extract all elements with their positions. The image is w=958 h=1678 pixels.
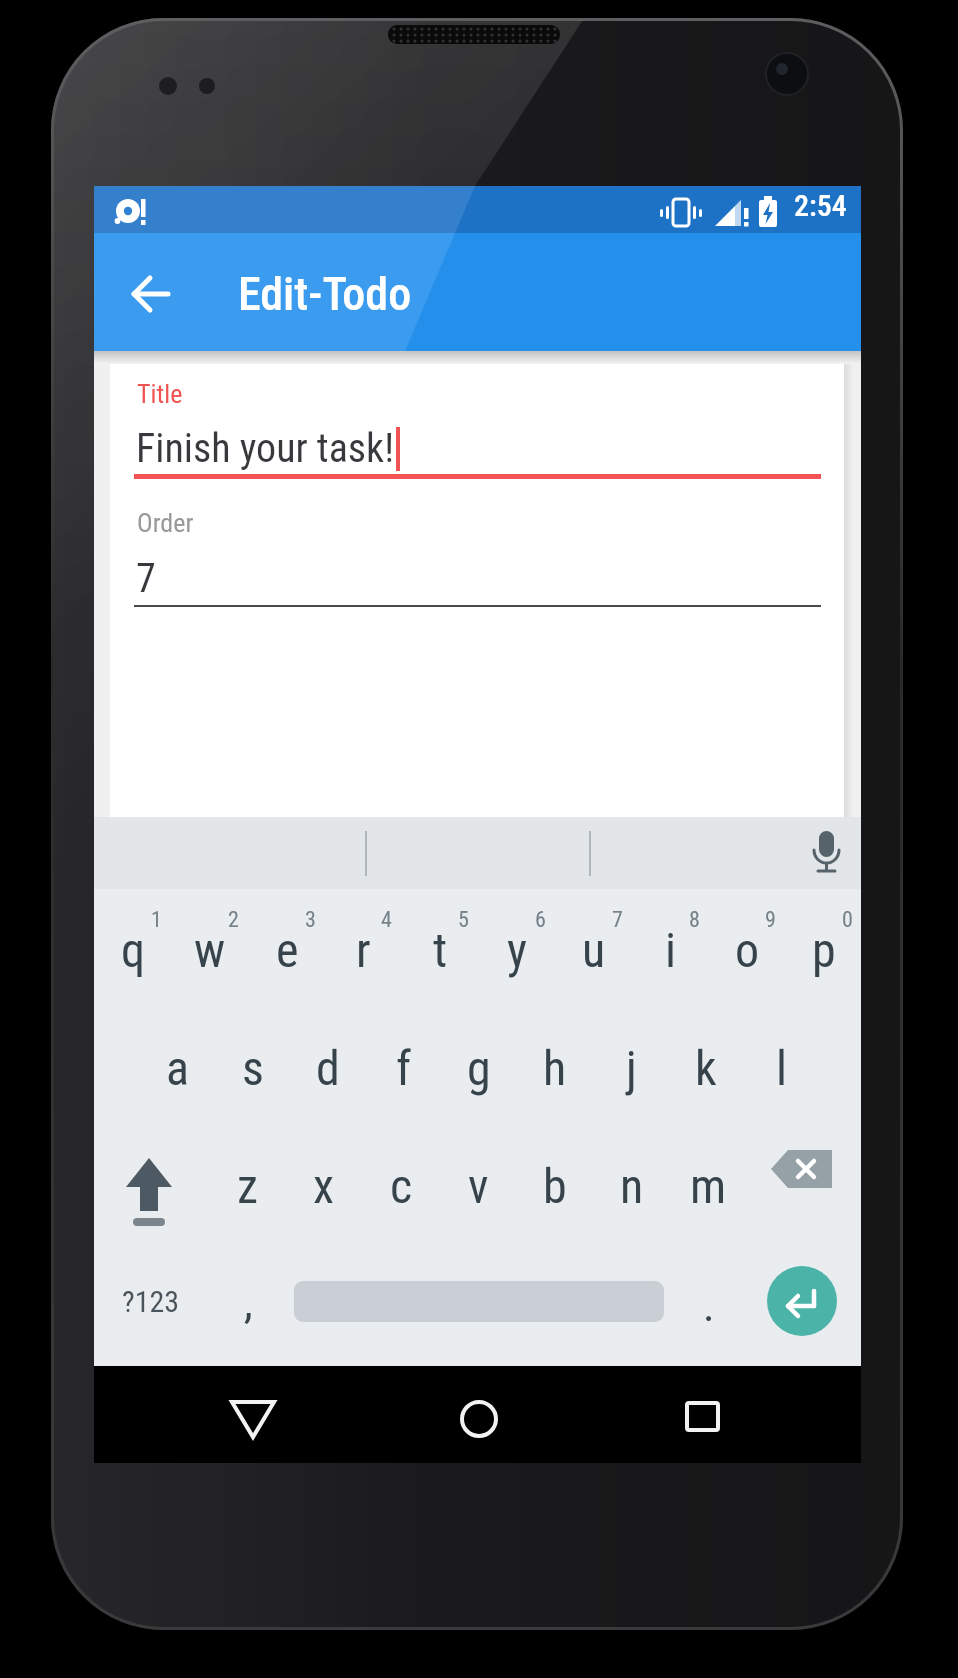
- button[interactable]: [796, 827, 856, 887]
- button[interactable]: Finish your task!: [136, 417, 796, 480]
- staticText: k: [695, 1040, 717, 1096]
- staticText: z: [237, 1158, 259, 1214]
- staticText: q: [121, 922, 146, 978]
- button[interactable]: ,: [223, 1259, 273, 1347]
- button[interactable]: [116, 259, 186, 329]
- staticText: m: [690, 1158, 727, 1214]
- button[interactable]: f: [366, 1040, 442, 1117]
- button[interactable]: .: [684, 1262, 734, 1350]
- staticText: s: [242, 1040, 264, 1096]
- staticText: j: [626, 1040, 637, 1096]
- button[interactable]: q: [95, 922, 171, 999]
- staticText: i: [665, 922, 677, 978]
- button[interactable]: [673, 1387, 733, 1447]
- staticText: p: [812, 922, 836, 978]
- staticText: b: [543, 1158, 567, 1214]
- staticText: o: [735, 922, 760, 978]
- button[interactable]: w: [172, 922, 248, 999]
- button[interactable]: p: [786, 922, 862, 999]
- staticText: Finish your task!: [136, 425, 394, 472]
- staticText: c: [390, 1158, 413, 1214]
- staticText: 9: [765, 907, 776, 933]
- button[interactable]: ?123: [96, 1271, 206, 1331]
- staticText: 5: [458, 907, 469, 933]
- button[interactable]: a: [139, 1040, 215, 1117]
- button[interactable]: j: [593, 1040, 669, 1117]
- button[interactable]: y: [479, 922, 555, 999]
- staticText: f: [396, 1040, 412, 1096]
- staticText: l: [776, 1040, 788, 1096]
- staticText: 7: [136, 555, 156, 602]
- button[interactable]: t: [402, 922, 478, 999]
- button[interactable]: r: [325, 922, 401, 999]
- staticText: e: [276, 922, 299, 978]
- staticText: 3: [305, 907, 316, 933]
- button[interactable]: g: [441, 1040, 517, 1117]
- staticText: a: [166, 1040, 189, 1096]
- button[interactable]: i: [633, 922, 709, 999]
- button[interactable]: z: [210, 1158, 286, 1235]
- staticText: 4: [381, 907, 392, 933]
- staticText: Title: [137, 379, 183, 409]
- staticText: n: [620, 1158, 644, 1214]
- staticText: 8: [689, 907, 700, 933]
- button[interactable]: u: [556, 922, 632, 999]
- staticText: y: [507, 922, 527, 978]
- staticText: t: [433, 922, 448, 978]
- button[interactable]: c: [363, 1158, 439, 1235]
- button[interactable]: v: [440, 1158, 516, 1235]
- button[interactable]: [109, 1144, 189, 1234]
- staticText: 1: [151, 907, 162, 933]
- button[interactable]: s: [215, 1040, 291, 1117]
- staticText: .: [703, 1280, 715, 1332]
- staticText: u: [582, 922, 606, 978]
- button[interactable]: o: [709, 922, 785, 999]
- button[interactable]: e: [249, 922, 325, 999]
- staticText: Order: [137, 508, 194, 538]
- staticText: d: [316, 1040, 340, 1096]
- staticText: r: [356, 922, 371, 978]
- button[interactable]: h: [517, 1040, 593, 1117]
- staticText: 2:54: [794, 188, 847, 223]
- button[interactable]: [449, 1389, 509, 1449]
- staticText: 2: [228, 907, 239, 933]
- staticText: v: [468, 1158, 489, 1214]
- button[interactable]: d: [290, 1040, 366, 1117]
- staticText: g: [467, 1040, 491, 1096]
- button[interactable]: [223, 1389, 283, 1449]
- staticText: ?123: [122, 1284, 180, 1319]
- button[interactable]: n: [594, 1158, 670, 1235]
- staticText: x: [313, 1158, 335, 1214]
- staticText: Edit-Todo: [238, 267, 412, 321]
- staticText: 0: [842, 907, 853, 933]
- button[interactable]: k: [668, 1040, 744, 1117]
- staticText: ,: [244, 1277, 253, 1329]
- staticText: 6: [535, 907, 546, 933]
- staticText: 7: [612, 907, 623, 933]
- button[interactable]: [767, 1266, 837, 1336]
- button[interactable]: [762, 1148, 842, 1228]
- staticText: h: [543, 1040, 567, 1096]
- button[interactable]: 7: [136, 548, 796, 608]
- button[interactable]: m: [670, 1158, 746, 1235]
- button[interactable]: x: [286, 1158, 362, 1235]
- staticText: w: [194, 922, 226, 978]
- button[interactable]: l: [744, 1040, 820, 1117]
- button[interactable]: b: [517, 1158, 593, 1235]
